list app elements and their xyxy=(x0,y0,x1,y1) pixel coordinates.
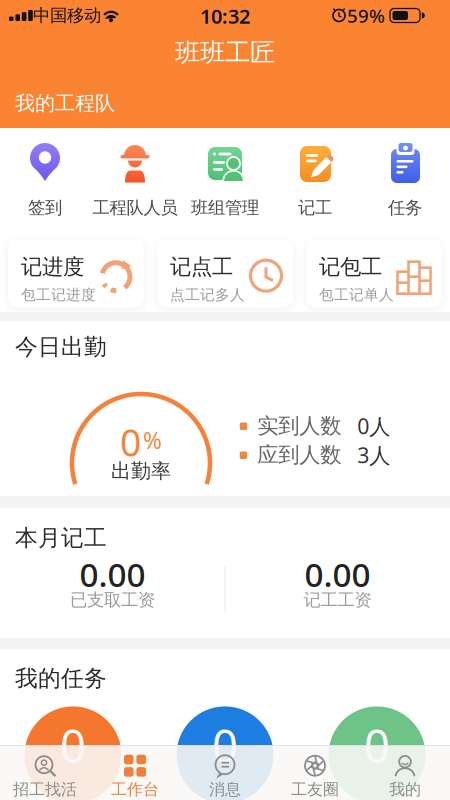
staticText: 我的工程队 xyxy=(15,91,115,116)
staticText: 0 xyxy=(120,417,141,467)
staticText: 班组管理 xyxy=(191,197,259,218)
button[interactable]: 工作台 xyxy=(90,754,180,799)
staticText: 0.00 xyxy=(304,552,370,596)
button[interactable]: 招工找活 xyxy=(0,754,90,799)
staticText: 工程队人员 xyxy=(92,197,177,218)
staticText: % xyxy=(143,425,162,455)
staticText: 包工记单人 xyxy=(319,286,394,304)
button[interactable]: 任务 xyxy=(360,141,450,218)
staticText: 签到 xyxy=(28,197,62,218)
button[interactable]: 班组管理 xyxy=(180,141,270,218)
staticText: 记包工 xyxy=(319,254,382,280)
staticText: 记工工资 xyxy=(303,589,371,611)
staticText: 记工 xyxy=(298,197,332,218)
staticText: 点工记多人 xyxy=(170,286,245,304)
staticText: 0 xyxy=(60,715,86,775)
staticText: 记点工 xyxy=(170,254,233,280)
staticText: 0 xyxy=(212,715,238,775)
button[interactable]: 记进度 xyxy=(8,239,144,307)
staticText: 实到人数 xyxy=(257,413,341,439)
staticText: 10:32 xyxy=(200,3,250,29)
button[interactable]: 工友圈 xyxy=(270,754,360,799)
button[interactable]: 消息 xyxy=(180,754,270,799)
staticText: 包工记进度 xyxy=(21,286,96,304)
staticText: 消息 xyxy=(209,780,241,799)
staticText: 本月记工 xyxy=(15,524,107,552)
staticText: 我的任务 xyxy=(15,665,107,692)
staticText: 出勤率 xyxy=(111,459,171,483)
button[interactable]: 签到 xyxy=(0,141,90,218)
staticText: 班班工匠 xyxy=(175,37,275,68)
button[interactable]: 记工 xyxy=(270,141,360,218)
staticText: 工友圈 xyxy=(291,780,339,799)
staticText: 0 xyxy=(364,715,390,775)
staticText: 0.00 xyxy=(79,552,145,596)
staticText: 3人 xyxy=(357,441,390,469)
button[interactable]: 记点工 xyxy=(157,239,293,307)
staticText: 应到人数 xyxy=(257,442,341,468)
staticText: 中国移动 xyxy=(33,5,101,26)
button[interactable]: 工程队人员 xyxy=(90,141,180,218)
staticText: 任务 xyxy=(388,197,422,218)
staticText: 已支取工资 xyxy=(70,589,155,611)
staticText: 我的 xyxy=(389,780,421,799)
button[interactable]: 我的 xyxy=(360,754,450,799)
staticText: 59% xyxy=(347,3,385,28)
button[interactable]: 记包工 xyxy=(306,239,442,307)
staticText: 工作台 xyxy=(111,780,159,799)
staticText: 招工找活 xyxy=(13,780,77,799)
staticText: 记进度 xyxy=(21,254,84,280)
staticText: 0人 xyxy=(357,412,390,440)
staticText: 今日出勤 xyxy=(15,333,107,361)
